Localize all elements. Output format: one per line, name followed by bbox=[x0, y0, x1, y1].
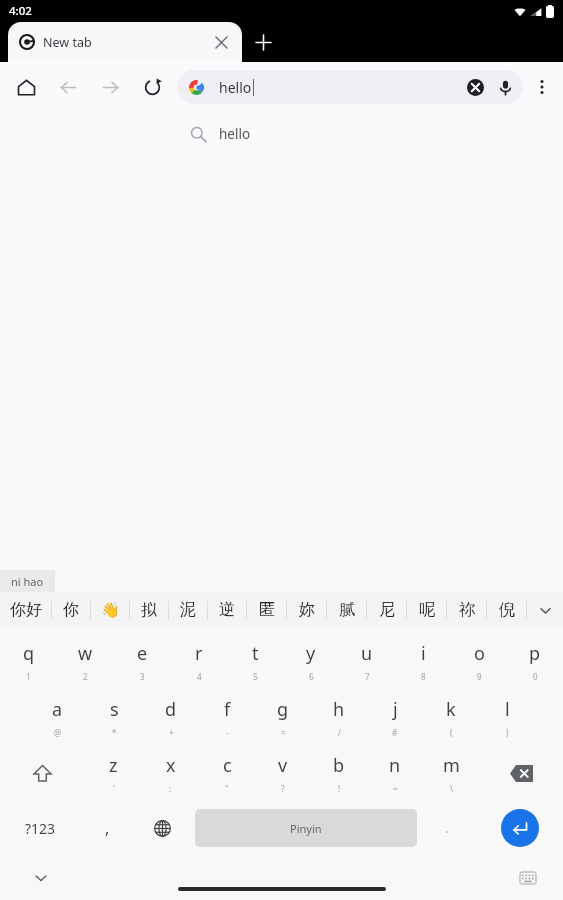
button[interactable]: q bbox=[0, 633, 57, 689]
button[interactable]: z bbox=[85, 745, 142, 801]
button[interactable]: Forward bbox=[93, 70, 127, 104]
button[interactable]: r bbox=[171, 633, 227, 689]
button[interactable]: c bbox=[199, 745, 255, 801]
button[interactable]: Expand candidates bbox=[527, 592, 563, 628]
button[interactable]: hello bbox=[177, 70, 523, 104]
staticText: ni hao bbox=[11, 574, 44, 589]
button[interactable]: 你好 bbox=[0, 592, 51, 628]
button[interactable]: Pinyin bbox=[195, 809, 417, 847]
button[interactable]: g bbox=[255, 689, 311, 745]
staticText: w bbox=[78, 641, 93, 666]
button[interactable]: Reload bbox=[135, 70, 169, 104]
staticText: u bbox=[361, 641, 373, 666]
staticText: ' bbox=[113, 783, 115, 794]
button[interactable]: , bbox=[80, 801, 135, 855]
button[interactable]: y bbox=[283, 633, 339, 689]
staticText: : bbox=[169, 783, 172, 794]
button[interactable]: Clear bbox=[460, 72, 490, 102]
button[interactable]: 尼 bbox=[367, 592, 406, 628]
button[interactable]: p bbox=[507, 633, 563, 689]
staticText: 4 bbox=[197, 671, 202, 682]
button[interactable]: o bbox=[451, 633, 507, 689]
button[interactable]: ?123 bbox=[0, 801, 80, 855]
button[interactable]: k bbox=[423, 689, 479, 745]
staticText: k bbox=[446, 697, 456, 722]
staticText: 拟 bbox=[141, 600, 157, 620]
button[interactable]: i bbox=[395, 633, 451, 689]
staticText: @ bbox=[54, 727, 62, 738]
button[interactable]: Change language bbox=[135, 801, 190, 855]
staticText: 2 bbox=[83, 671, 88, 682]
button[interactable]: Back bbox=[51, 70, 85, 104]
button[interactable]: 逆 bbox=[208, 592, 246, 628]
staticText: * bbox=[112, 727, 117, 738]
staticText: 9 bbox=[477, 671, 482, 682]
button[interactable]: 妳 bbox=[287, 592, 326, 628]
staticText: \ bbox=[450, 783, 453, 794]
button[interactable]: New tab bbox=[8, 22, 242, 62]
staticText: = bbox=[281, 727, 286, 738]
button[interactable]: Close tab bbox=[210, 31, 232, 53]
button[interactable]: s bbox=[86, 689, 143, 745]
button[interactable]: More options bbox=[523, 68, 561, 106]
button[interactable]: u bbox=[339, 633, 395, 689]
button[interactable]: 你 bbox=[52, 592, 90, 628]
button[interactable]: f bbox=[199, 689, 255, 745]
staticText: 倪 bbox=[499, 600, 515, 620]
button[interactable]: h bbox=[311, 689, 367, 745]
button[interactable]: 拟 bbox=[130, 592, 168, 628]
staticText: + bbox=[169, 727, 174, 738]
button[interactable]: 泥 bbox=[169, 592, 207, 628]
staticText: 匿 bbox=[259, 600, 275, 620]
staticText: m bbox=[443, 753, 460, 778]
button[interactable]: Backspace bbox=[479, 745, 563, 801]
button[interactable]: e bbox=[114, 633, 171, 689]
staticText: , bbox=[105, 817, 110, 839]
button[interactable]: w bbox=[57, 633, 114, 689]
button[interactable]: v bbox=[255, 745, 311, 801]
button[interactable]: t bbox=[227, 633, 283, 689]
button[interactable]: d bbox=[143, 689, 199, 745]
button[interactable]: n bbox=[367, 745, 423, 801]
button[interactable]: Home bbox=[9, 70, 43, 104]
button[interactable]: Voice search bbox=[490, 72, 520, 102]
staticText: " bbox=[225, 783, 229, 794]
staticText: hello bbox=[219, 125, 251, 143]
button[interactable]: Switch keyboard bbox=[513, 863, 543, 893]
staticText: n bbox=[389, 753, 401, 778]
button[interactable]: Enter bbox=[477, 801, 563, 855]
staticText: / bbox=[338, 727, 341, 738]
staticText: e bbox=[137, 641, 148, 666]
staticText: b bbox=[333, 753, 345, 778]
staticText: hello bbox=[219, 78, 252, 97]
button[interactable]: 👋 bbox=[91, 592, 129, 628]
staticText: g bbox=[277, 697, 289, 722]
button[interactable]: 匿 bbox=[247, 592, 286, 628]
staticText: - bbox=[226, 727, 229, 738]
button[interactable]: a bbox=[29, 689, 86, 745]
staticText: d bbox=[165, 697, 177, 722]
staticText: 5 bbox=[253, 671, 258, 682]
button[interactable]: 祢 bbox=[447, 592, 486, 628]
button[interactable]: 倪 bbox=[487, 592, 526, 628]
staticText: c bbox=[223, 753, 232, 778]
button[interactable]: l bbox=[479, 689, 535, 745]
staticText: 7 bbox=[365, 671, 370, 682]
button[interactable]: 腻 bbox=[327, 592, 366, 628]
button[interactable]: j bbox=[367, 689, 423, 745]
button[interactable]: m bbox=[423, 745, 479, 801]
staticText: 👋 bbox=[101, 601, 120, 619]
staticText: 3 bbox=[140, 671, 145, 682]
staticText: ( bbox=[450, 727, 453, 738]
button[interactable]: 呢 bbox=[407, 592, 446, 628]
button[interactable]: hello bbox=[0, 112, 563, 156]
staticText: ! bbox=[338, 783, 341, 794]
staticText: t bbox=[252, 641, 259, 666]
button[interactable]: New tab bbox=[243, 22, 283, 62]
button[interactable]: b bbox=[311, 745, 367, 801]
button[interactable]: Shift bbox=[0, 745, 85, 801]
button[interactable]: x bbox=[142, 745, 199, 801]
staticText: New tab bbox=[43, 34, 92, 51]
button[interactable]: Hide keyboard bbox=[26, 863, 56, 893]
